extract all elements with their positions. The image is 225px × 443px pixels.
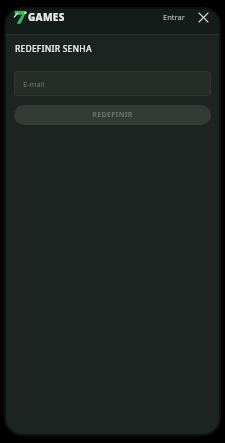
button[interactable]: REDEFINIR <box>14 105 211 125</box>
staticText: REDEFINIR <box>92 110 133 120</box>
staticText: REDEFINIR SENHA <box>15 43 92 55</box>
button[interactable]: E-mail <box>14 71 211 96</box>
staticText: GAMES <box>28 10 65 24</box>
staticText: Entrar <box>163 12 185 22</box>
button[interactable]: Fechar <box>195 9 211 25</box>
staticText: E-mail <box>23 79 45 89</box>
button[interactable]: Entrar <box>160 9 188 25</box>
button[interactable]: GAMES <box>14 10 65 24</box>
